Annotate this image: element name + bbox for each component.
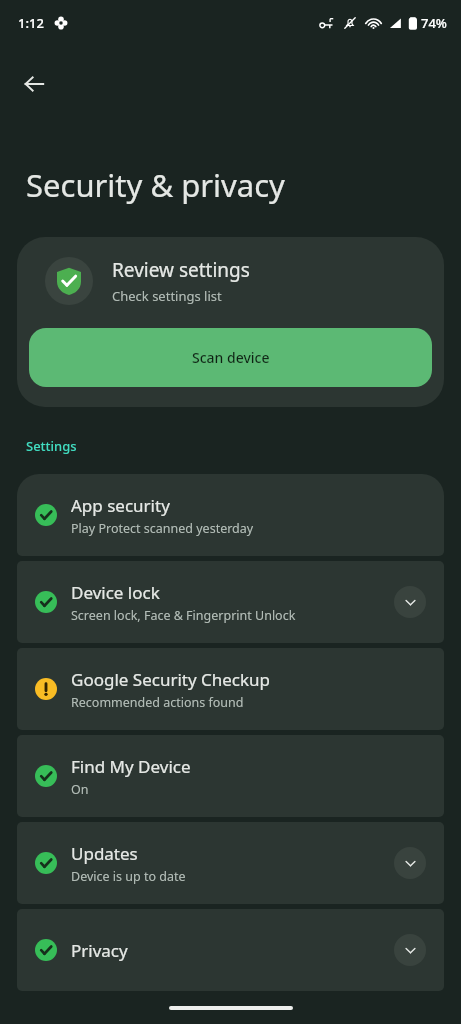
staticText: Device lock [71,581,160,604]
staticText: 1:12 [18,14,44,32]
button[interactable]: Google Security Checkup [17,648,444,730]
staticText: Review settings [112,257,250,283]
staticText: 74% [421,14,447,32]
staticText: Settings [26,437,77,455]
button[interactable]: Review settings [17,237,444,407]
staticText: Scan device [192,348,270,367]
staticText: Device is up to date [71,868,186,885]
staticText: Google Security Checkup [71,668,271,691]
staticText: Updates [71,842,138,865]
button[interactable]: Find My Device [17,735,444,817]
staticText: App security [71,494,170,517]
staticText: Find My Device [71,755,191,778]
button[interactable]: Privacy [17,909,444,991]
staticText: Screen lock, Face & Fingerprint Unlock [71,607,296,624]
button[interactable]: Scan device [29,328,432,387]
button[interactable]: Expand Updates [394,847,426,879]
staticText: Play Protect scanned yesterday [71,520,254,537]
staticText: Recommended actions found [71,694,244,711]
button[interactable]: App security [17,474,444,556]
staticText: Privacy [71,939,128,962]
staticText: Check settings list [112,287,222,305]
staticText: Security & privacy [26,164,285,206]
staticText: On [71,781,89,798]
button[interactable]: Expand Privacy [394,934,426,966]
button[interactable]: Expand Device lock [394,586,426,618]
button[interactable]: Back [10,60,58,108]
button[interactable]: Updates [17,822,444,904]
button[interactable]: Device lock [17,561,444,643]
